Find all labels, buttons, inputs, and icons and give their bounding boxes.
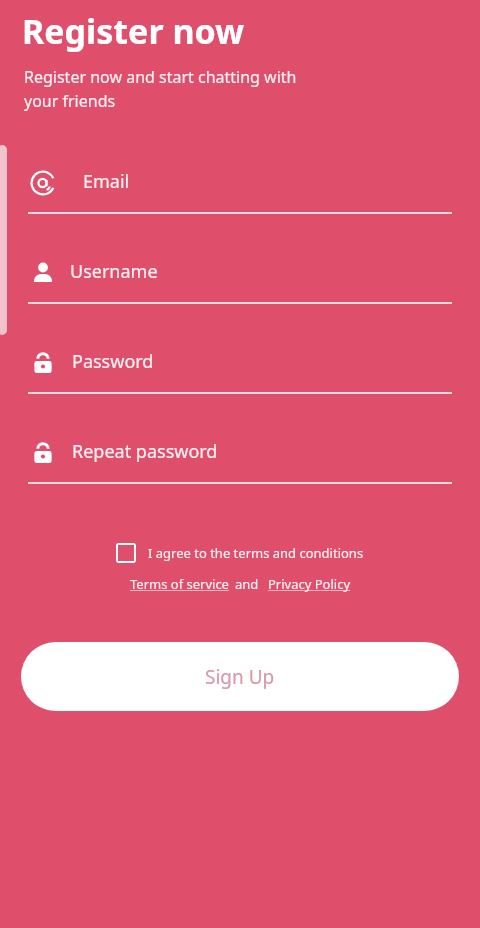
button[interactable]: Terms of service (130, 575, 229, 593)
button[interactable]: Username (0, 244, 480, 334)
staticText: Email (83, 169, 130, 194)
button[interactable]: Privacy Policy (268, 575, 351, 593)
button[interactable]: Sign Up (21, 642, 459, 711)
staticText: Sign Up (205, 664, 275, 690)
staticText: Username (70, 259, 158, 284)
button[interactable]: Repeat password (0, 424, 480, 514)
staticText: Privacy Policy (268, 575, 351, 593)
other: Repeat password (30, 440, 56, 466)
button[interactable]: Email (0, 154, 480, 244)
staticText: Register now and start chatting with you… (24, 66, 297, 112)
button[interactable]: Password (0, 334, 480, 424)
staticText: I agree to the terms and conditions (148, 544, 364, 562)
other: Email (30, 170, 56, 196)
button[interactable]: I agree to the terms and conditions (0, 539, 480, 567)
staticText: Terms of service (130, 575, 229, 593)
other: Username (30, 260, 56, 286)
other: Password (30, 350, 56, 376)
staticText: and (235, 575, 259, 593)
staticText: Repeat password (72, 439, 218, 464)
staticText: Password (72, 349, 154, 374)
staticText: Register now (22, 8, 245, 54)
